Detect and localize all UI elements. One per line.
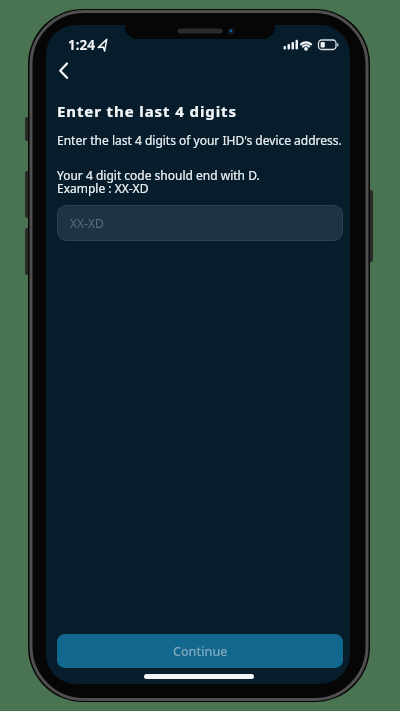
button[interactable] — [52, 58, 76, 82]
button[interactable]: Continue — [57, 634, 343, 668]
staticText: Your 4 digit code should end with D. Exa… — [57, 167, 260, 196]
staticText: XX-XD — [70, 215, 104, 231]
staticText: Continue — [173, 643, 228, 660]
staticText: Enter the last 4 digits of your IHD's de… — [57, 132, 342, 148]
staticText: Enter the last 4 digits — [57, 101, 237, 121]
staticText: 1:24 — [68, 36, 95, 54]
button[interactable]: XX-XD — [57, 205, 343, 241]
